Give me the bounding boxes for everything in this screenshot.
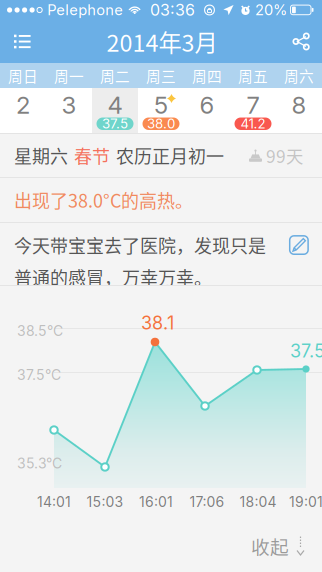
staticText: 2 [16, 90, 30, 119]
staticText: 农历正月初一 [116, 142, 224, 169]
button[interactable]: 4 [92, 88, 138, 133]
staticText: 19:01 [289, 493, 322, 510]
staticText: 37.5 [102, 116, 128, 132]
staticText: 5 [154, 90, 168, 119]
button[interactable]: 6 [184, 88, 230, 133]
button[interactable]: 今天带宝宝去了医院，发现只是普通的感冒，万幸万幸。 [0, 223, 322, 285]
staticText: 周四 [192, 65, 222, 86]
staticText: 2014年3月 [106, 25, 217, 58]
button[interactable]: 出现了38.0°C的高热。 [0, 178, 322, 222]
button[interactable]: Menu [0, 21, 45, 62]
staticText: 14:01 [37, 493, 71, 510]
staticText: 7 [246, 90, 259, 119]
staticText: 38.1 [141, 312, 174, 334]
staticText: 星期六 [14, 142, 68, 169]
button[interactable]: Share [279, 20, 322, 62]
staticText: 41.2 [240, 116, 265, 132]
staticText: 周六 [284, 65, 314, 86]
staticText: 20% [255, 1, 287, 19]
staticText: 周五 [238, 65, 268, 86]
staticText: 今天带宝宝去了医院，发现只是普通的感冒，万幸万幸。 [14, 232, 266, 290]
button[interactable]: 2 [0, 88, 46, 133]
staticText: 17:06 [189, 493, 224, 510]
button[interactable]: 5 [138, 88, 184, 133]
staticText: 38.5°C [17, 322, 63, 339]
button[interactable]: 收起 [0, 520, 322, 572]
button[interactable]: 星期六 [0, 134, 322, 177]
staticText: 6 [199, 90, 214, 119]
staticText: 15:03 [86, 493, 123, 510]
staticText: 38.0 [147, 116, 175, 132]
staticText: 周日 [8, 65, 38, 86]
staticText: Pelephone [47, 1, 123, 19]
staticText: 37.5 [290, 340, 322, 362]
staticText: 出现了38.0°C的高热。 [14, 187, 193, 213]
button[interactable]: 7 [230, 88, 276, 133]
staticText: 3 [61, 90, 76, 119]
staticText: 4 [107, 90, 122, 119]
staticText: 周二 [100, 65, 130, 86]
button[interactable]: 8 [276, 88, 322, 133]
button[interactable]: 3 [46, 88, 92, 133]
staticText: 35.3°C [17, 455, 62, 472]
staticText: 03:36 [150, 0, 195, 20]
staticText: 周三 [146, 65, 176, 86]
staticText: 99天 [266, 143, 303, 168]
staticText: 周一 [54, 65, 84, 86]
staticText: 16:01 [139, 493, 173, 510]
staticText: 春节 [74, 142, 110, 169]
staticText: 37.5°C [17, 366, 61, 383]
staticText: 收起 [251, 532, 289, 559]
staticText: 8 [291, 90, 306, 119]
staticText: 18:04 [239, 493, 276, 510]
